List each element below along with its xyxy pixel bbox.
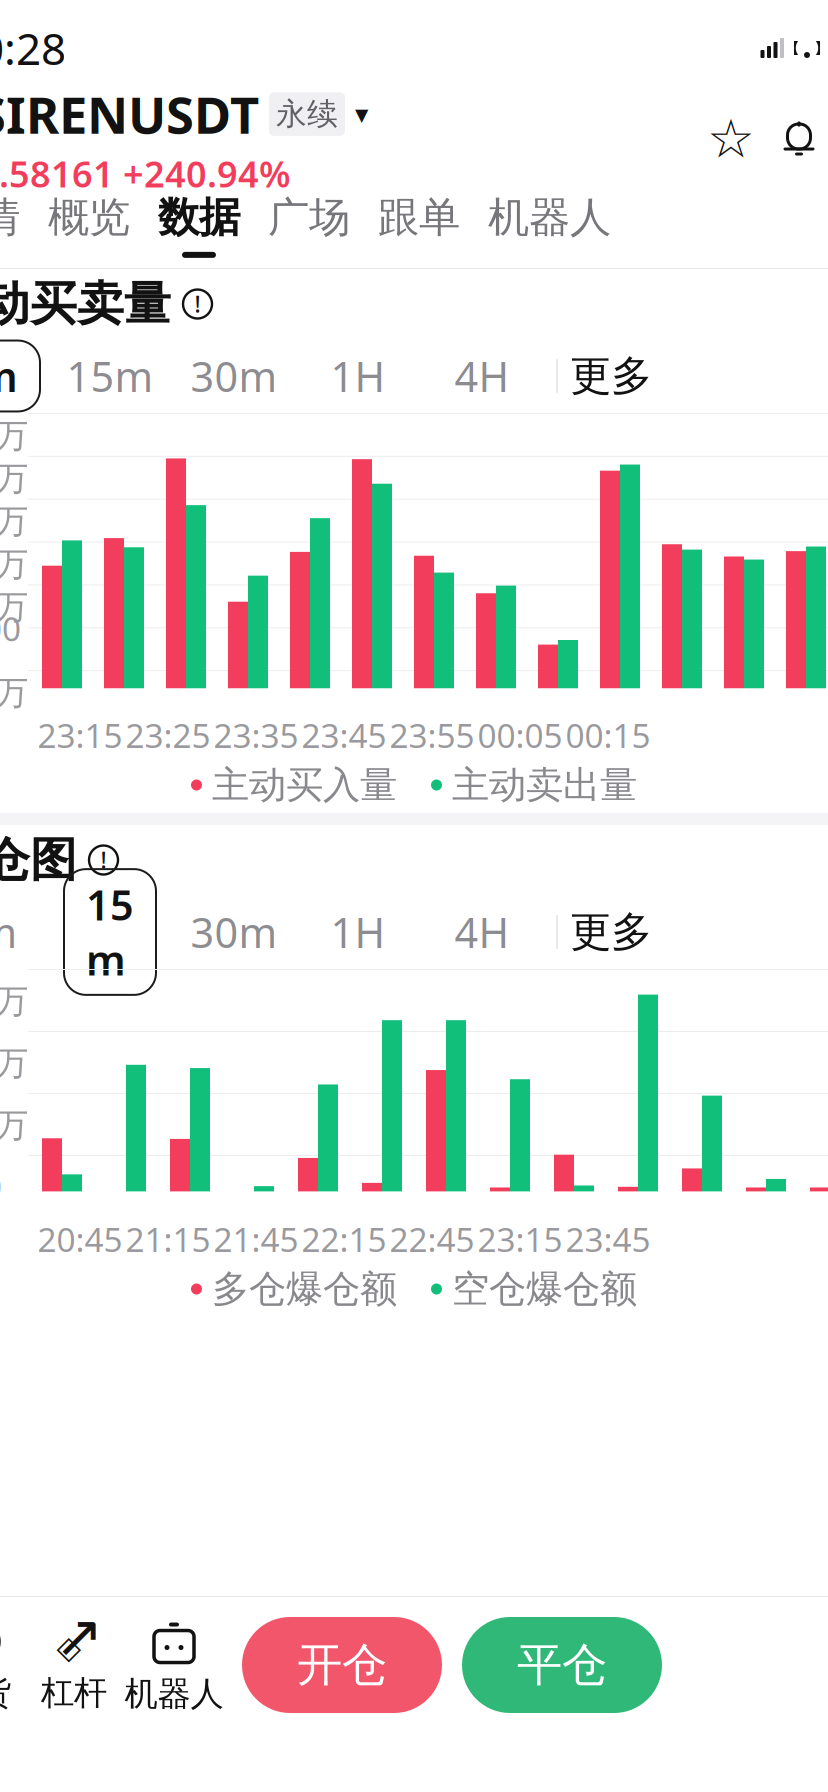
staticText: 23:45 — [565, 1217, 650, 1261]
staticText: ! — [194, 289, 200, 319]
button[interactable]: 行情 — [0, 184, 34, 266]
staticText: 1H — [330, 905, 385, 959]
staticText: ▾ — [355, 99, 368, 129]
staticText: 22:45 — [389, 1217, 474, 1261]
staticText: 杠杆 — [41, 1672, 107, 1713]
staticText: 5m — [0, 905, 17, 959]
staticText: 15m — [66, 349, 153, 403]
staticText: 00:15 — [565, 713, 650, 757]
staticText: ! — [100, 845, 106, 875]
staticText: 机器人 — [488, 192, 611, 243]
staticText: 21:15 — [125, 1217, 210, 1261]
staticText: 概览 — [48, 192, 130, 243]
button[interactable]: 30m — [172, 346, 296, 406]
button[interactable]: 1H — [296, 902, 420, 962]
staticText: 更多 — [570, 351, 652, 401]
button[interactable]: ◇ — [0, 1613, 26, 1717]
button[interactable]: 机器人 — [474, 184, 625, 266]
staticText: 30.00万 — [0, 978, 28, 1022]
staticText: 广场 — [268, 192, 350, 243]
button[interactable]: 15m — [48, 346, 172, 406]
staticText: 行情 — [0, 192, 20, 243]
staticText: 23:45 — [301, 713, 386, 757]
button[interactable]: 4H — [420, 346, 544, 406]
staticText: 15m — [86, 877, 134, 987]
button[interactable]: 概览 — [34, 184, 144, 266]
staticText: 主动卖出量 — [452, 762, 637, 808]
staticText: 350.0万 — [0, 412, 28, 457]
staticText: 4H — [454, 905, 509, 959]
staticText: 23:15 — [37, 713, 122, 757]
staticText: SIRENUSDT — [0, 80, 259, 148]
staticText: 机器人 — [124, 1673, 223, 1714]
staticText: 20.00万 — [0, 1040, 28, 1084]
button[interactable]: 5m — [0, 346, 48, 406]
button[interactable]: 机器人 — [122, 1613, 226, 1717]
staticText: 5m — [0, 349, 18, 403]
staticText: 00:05 — [477, 713, 562, 757]
button[interactable]: 4H — [420, 902, 544, 962]
button[interactable]: 平仓 — [462, 1617, 662, 1713]
staticText: 23:55 — [389, 713, 474, 757]
button[interactable]: 数据 — [144, 184, 254, 266]
staticText: 20:45 — [37, 1217, 122, 1261]
staticText: 跟单 — [378, 192, 460, 243]
button[interactable]: 跟单 — [364, 184, 474, 266]
staticText: 永续 — [276, 95, 338, 133]
staticText: ↗ — [54, 1603, 103, 1670]
staticText: 爆仓图 — [0, 831, 77, 889]
staticText: 数据 — [158, 192, 240, 243]
staticText: 23:15 — [477, 1217, 562, 1261]
staticText: 主动买入量 — [212, 762, 397, 808]
staticText: 250.0万 — [0, 498, 28, 542]
staticText: 空仓爆仓额 — [452, 1266, 637, 1312]
staticText: 多仓爆仓额 — [212, 1266, 397, 1312]
staticText: 现货 — [0, 1672, 11, 1713]
staticText: 开仓 — [297, 1637, 387, 1693]
button[interactable]: 5m — [0, 902, 48, 962]
staticText: 23:25 — [125, 713, 210, 757]
staticText: 22:15 — [301, 1217, 386, 1261]
staticText: 30m — [190, 349, 277, 403]
staticText: 300.0万 — [0, 455, 28, 499]
button[interactable]: ↗ — [26, 1613, 122, 1717]
staticText: 平仓 — [517, 1637, 607, 1693]
staticText: ☆ — [707, 109, 755, 169]
staticText: 23:35 — [213, 713, 298, 757]
staticText: 更多 — [570, 907, 652, 957]
staticText: 150.0万 — [0, 584, 28, 628]
button[interactable]: 更多 — [570, 902, 652, 962]
staticText: 30m — [190, 905, 277, 959]
staticText: 00:28 — [0, 19, 66, 77]
staticText: 0.00 — [0, 1164, 2, 1208]
staticText: 21:45 — [213, 1217, 298, 1261]
staticText: 0.58161 +240.94% — [0, 150, 291, 197]
button[interactable]: 广场 — [254, 184, 364, 266]
staticText: ◇ — [56, 1629, 81, 1666]
button[interactable]: Favourite — [708, 116, 754, 162]
staticText: 4H — [454, 349, 509, 403]
staticText: 50.00万 — [0, 669, 28, 714]
button[interactable]: 1H — [296, 346, 420, 406]
staticText: 1H — [330, 349, 385, 403]
button[interactable]: 更多 — [570, 346, 652, 406]
button[interactable]: 15m — [48, 902, 172, 962]
button[interactable]: 30m — [172, 902, 296, 962]
staticText: 100.00万 — [0, 606, 21, 691]
staticText: 主动买卖量 — [0, 275, 171, 333]
button[interactable]: Alerts — [776, 116, 822, 162]
staticText: 10.00万 — [0, 1102, 28, 1146]
staticText: 200.0万 — [0, 541, 28, 585]
button[interactable]: 开仓 — [242, 1617, 442, 1713]
